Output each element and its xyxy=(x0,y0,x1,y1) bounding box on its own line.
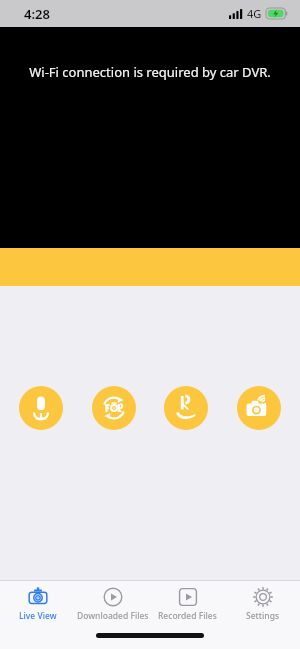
button[interactable]: Settings xyxy=(225,581,300,627)
button[interactable]: Switch camera xyxy=(92,386,136,430)
staticText: 4G xyxy=(247,6,262,21)
button[interactable]: Microphone xyxy=(19,386,63,430)
button[interactable]: Recorded Files xyxy=(150,581,225,627)
staticText: Downloaded Files xyxy=(77,610,149,622)
button[interactable]: Downloaded Files xyxy=(75,581,150,627)
staticText: 4:28 xyxy=(24,5,50,23)
button[interactable]: Recording xyxy=(164,386,208,430)
button[interactable]: Live View xyxy=(0,581,75,627)
staticText: Settings xyxy=(246,610,280,622)
button[interactable]: Snapshot xyxy=(237,386,281,430)
staticText: Live View xyxy=(19,610,57,622)
staticText: Recorded Files xyxy=(158,610,217,622)
staticText: Wi-Fi connection is required by car DVR. xyxy=(0,63,300,81)
